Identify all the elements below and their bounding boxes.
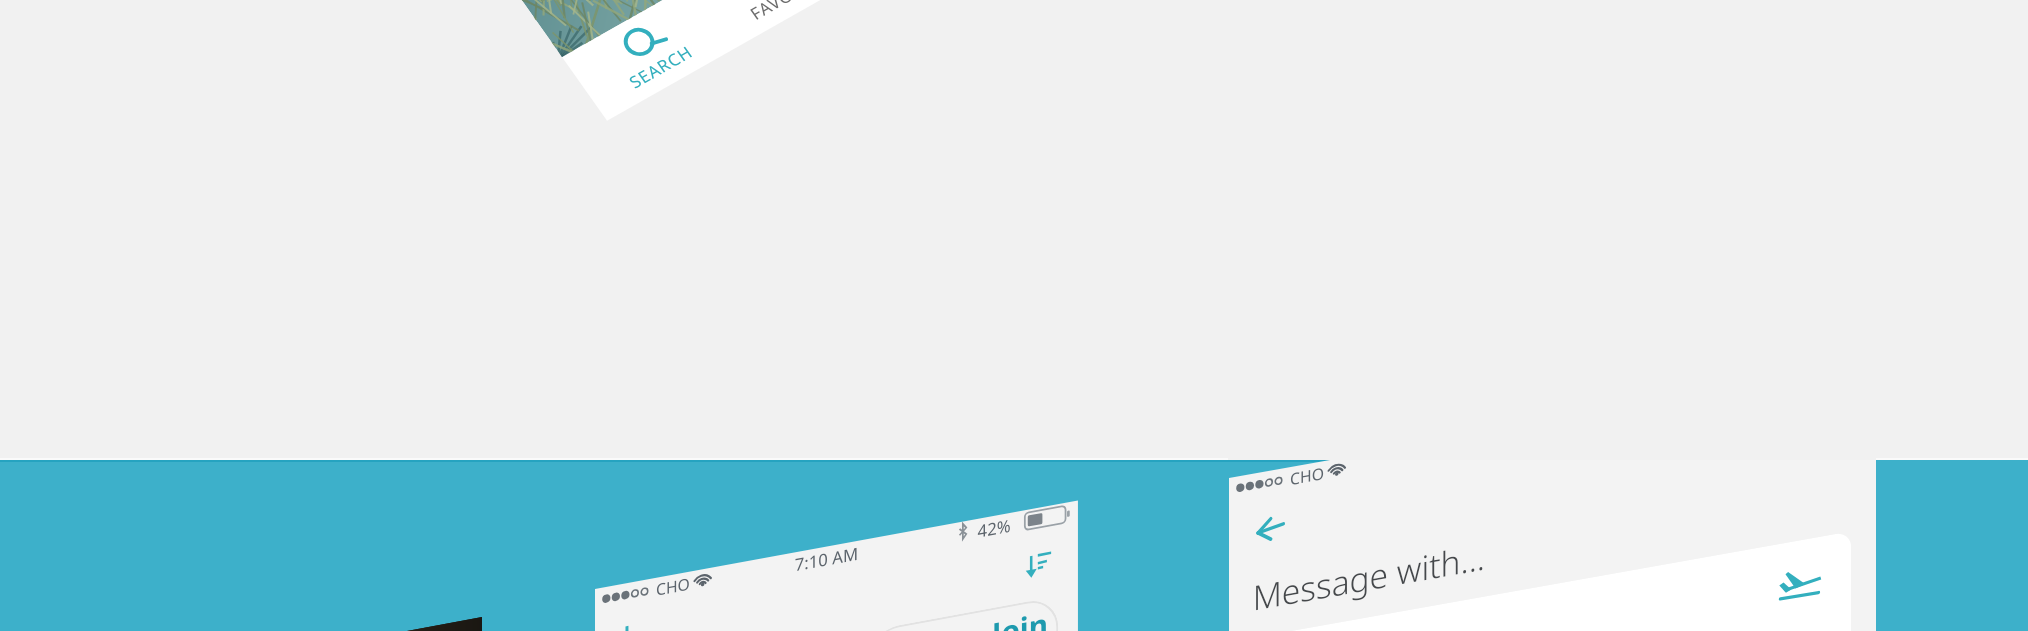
button[interactable]: Sort	[1013, 540, 1063, 590]
staticText: SEARCH	[621, 29, 701, 104]
button[interactable]: Search	[552, 0, 743, 138]
staticText: ed to Join	[889, 545, 1069, 631]
staticText: Message with...	[1230, 460, 1508, 631]
staticText: 7:10 AM	[783, 515, 870, 603]
button[interactable]: Flights	[1757, 544, 1843, 631]
other: Search	[613, 12, 672, 68]
staticText: CHO	[1279, 460, 1335, 505]
staticText: 42%	[966, 500, 1022, 557]
button[interactable]: Back	[1240, 498, 1303, 562]
staticText: CHO	[645, 558, 701, 615]
button[interactable]: ed to Join	[837, 517, 1090, 631]
button[interactable]: FAVORITES	[683, 0, 875, 63]
staticText: FAVORITES	[742, 0, 844, 40]
